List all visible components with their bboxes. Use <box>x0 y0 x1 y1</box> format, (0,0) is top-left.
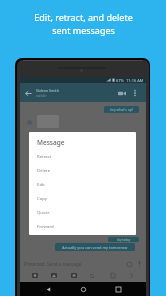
button[interactable]: File <box>107 270 118 281</box>
button[interactable]: More options <box>129 87 140 98</box>
button[interactable]: Retract <box>29 149 136 163</box>
staticText: available <box>36 94 47 98</box>
staticText: Actually you can send my tomorrow <box>62 245 128 250</box>
staticText: Send a message <box>47 261 82 267</box>
button[interactable]: Voice message <box>135 260 143 268</box>
button[interactable]: Video call <box>115 86 129 100</box>
staticText: Retract <box>37 153 52 159</box>
button[interactable]: Emoji <box>125 260 133 268</box>
button[interactable]: Delete <box>29 163 136 177</box>
staticText: Quote <box>37 209 50 215</box>
staticText: Edit <box>37 181 45 187</box>
button[interactable]: More <box>126 270 137 281</box>
staticText: 11:16 AM <box>126 78 144 83</box>
button[interactable]: Quote <box>29 205 136 219</box>
staticText: Forward <box>37 223 54 229</box>
staticText: Protected. <box>24 261 47 267</box>
button[interactable]: Back <box>41 282 55 296</box>
staticText: hey what's up? <box>110 107 134 112</box>
staticText: G <box>90 272 95 280</box>
button[interactable]: Google <box>87 270 98 281</box>
staticText: 67% <box>116 78 124 83</box>
button[interactable]: Document <box>68 270 79 281</box>
button[interactable]: Home <box>76 282 90 296</box>
button[interactable]: Edit <box>29 177 136 191</box>
button[interactable]: Copy <box>29 191 136 205</box>
staticText: Message <box>37 138 65 147</box>
button[interactable]: Back <box>20 85 36 101</box>
staticText: Edit, retract, and delete <box>34 11 133 23</box>
button[interactable]: Recents <box>111 282 125 296</box>
button[interactable]: Camera <box>29 270 40 281</box>
staticText: sky today <box>117 238 131 242</box>
staticText: Gideon Smith <box>36 88 59 93</box>
staticText: Delete <box>37 167 51 173</box>
staticText: sent messages <box>52 24 115 36</box>
staticText: Copy <box>37 195 48 201</box>
button[interactable]: Gallery <box>48 270 59 281</box>
button[interactable]: Forward <box>29 219 136 233</box>
